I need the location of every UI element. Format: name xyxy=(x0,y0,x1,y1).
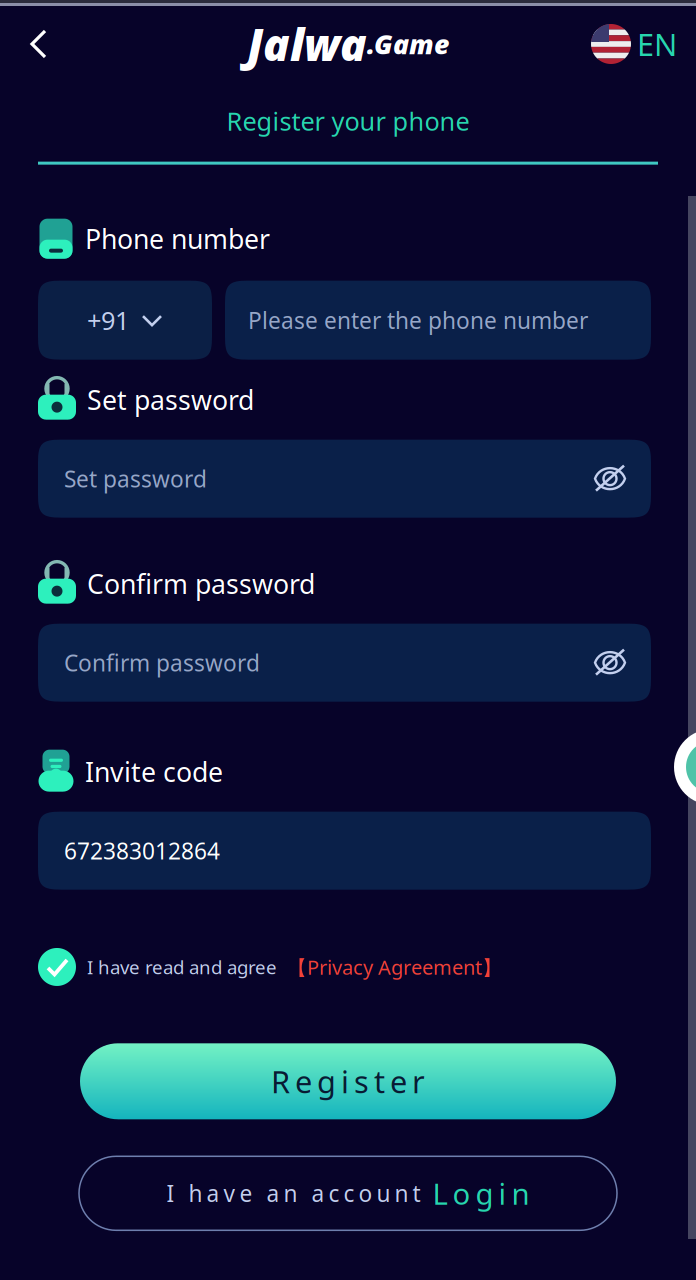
button[interactable]: Back xyxy=(0,16,68,72)
button[interactable]: I h a v e a n a c c o u n t xyxy=(79,1156,617,1230)
staticText: 672383012864 xyxy=(64,836,220,866)
staticText: Confirm password xyxy=(87,566,315,601)
staticText: 【Privacy Agreement】 xyxy=(287,954,502,980)
staticText: EN xyxy=(637,24,677,64)
staticText: Jalwa xyxy=(247,15,367,73)
staticText: R e g i s t e r xyxy=(271,1061,425,1102)
staticText: Phone number xyxy=(85,221,270,256)
staticText: I h a v e a n a c c o u n t xyxy=(166,1178,420,1208)
button[interactable]: +91 xyxy=(38,281,212,360)
button[interactable]: Agree to the privacy agreement xyxy=(38,948,76,986)
staticText: L o g i n xyxy=(432,1174,529,1213)
button[interactable]: Show confirm password xyxy=(593,636,651,690)
button[interactable]: Show password xyxy=(593,452,651,506)
staticText: Please enter the phone number xyxy=(248,305,588,335)
staticText: I have read and agree xyxy=(87,955,277,979)
staticText: .Game xyxy=(367,26,449,62)
staticText: +91 xyxy=(87,303,129,337)
button[interactable]: R e g i s t e r xyxy=(80,1043,616,1119)
staticText: Set password xyxy=(64,464,207,494)
staticText: Register your phone xyxy=(226,104,469,138)
staticText: Confirm password xyxy=(64,648,260,678)
staticText: Invite code xyxy=(85,754,223,789)
button[interactable]: 【Privacy Agreement】 xyxy=(277,948,502,986)
staticText: Set password xyxy=(87,382,254,417)
button[interactable]: EN xyxy=(591,14,696,74)
